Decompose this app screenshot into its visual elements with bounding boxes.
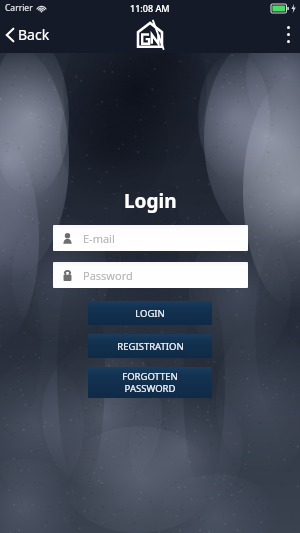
button[interactable]: Back	[0, 19, 60, 50]
staticText: Login	[124, 188, 177, 214]
button[interactable]: LOGIN	[88, 301, 212, 325]
staticText: 11:08 AM	[130, 2, 170, 14]
button[interactable]: REGISTRATION	[88, 334, 212, 358]
button[interactable]: Home	[132, 17, 168, 52]
staticText: Password	[83, 268, 133, 283]
staticText: REGISTRATION	[117, 340, 184, 353]
button[interactable]: E-mail	[53, 225, 248, 251]
staticText: FORGOTTEN PASSWORD	[122, 370, 178, 395]
button[interactable]: FORGOTTEN PASSWORD	[88, 367, 212, 398]
staticText: LOGIN	[135, 307, 165, 320]
staticText: E-mail	[83, 231, 115, 246]
staticText: Back	[18, 25, 50, 44]
button[interactable]: Password	[53, 262, 248, 288]
button[interactable]: More options	[277, 20, 300, 49]
staticText: Carrier	[5, 2, 33, 14]
